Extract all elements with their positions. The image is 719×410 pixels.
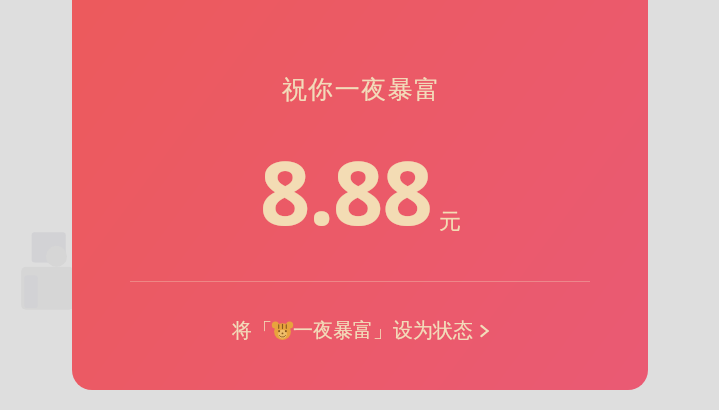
staticText: 将「 [232, 318, 272, 343]
button[interactable]: 祝你一夜暴富 [72, 0, 648, 390]
other: Open status picker [480, 323, 489, 339]
staticText: 祝你一夜暴富 [281, 74, 440, 105]
button[interactable]: 将「 [72, 312, 648, 349]
staticText: 元 [439, 208, 461, 236]
staticText: 8.88 [260, 131, 432, 251]
staticText: 一夜暴富」设为状态 [293, 318, 473, 343]
